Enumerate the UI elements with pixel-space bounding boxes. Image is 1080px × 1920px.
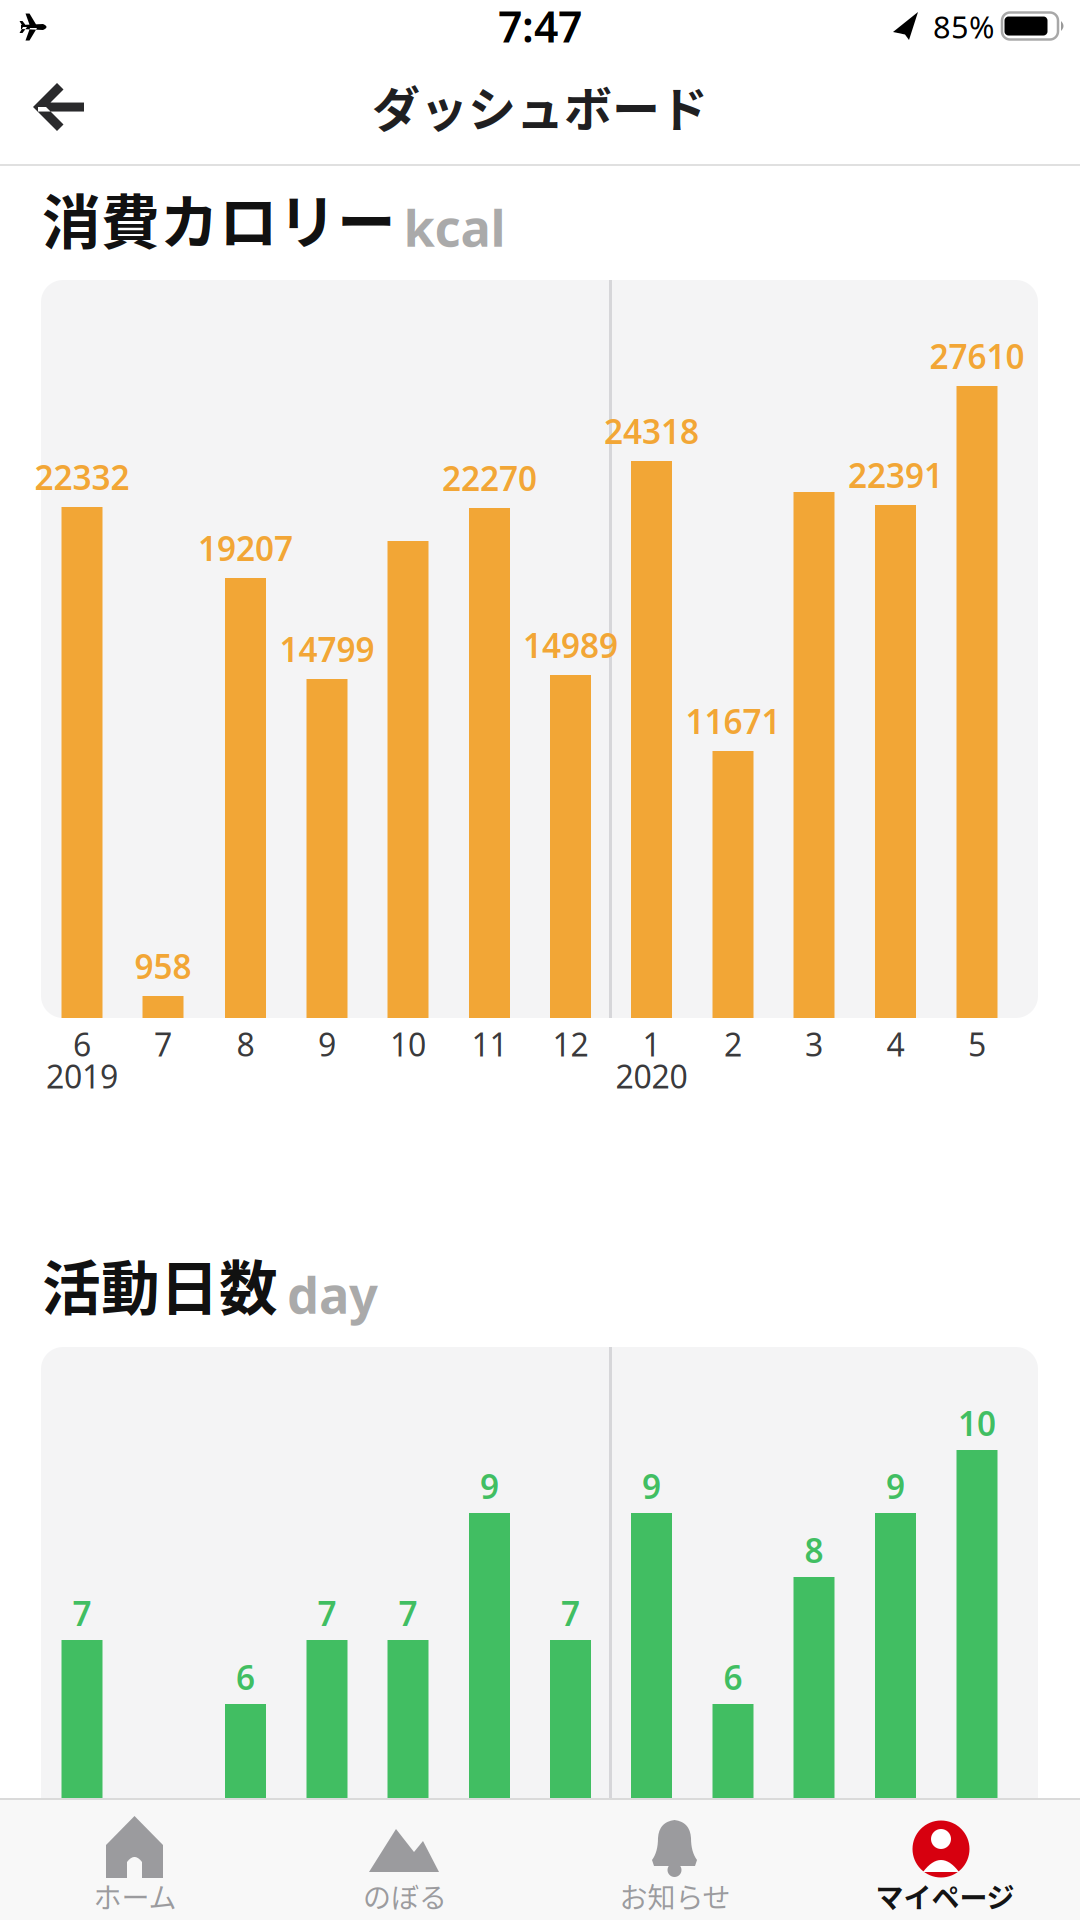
staticText: ダッシュボード [372,71,708,141]
staticText: 消費カロリー [42,176,396,261]
staticText: 10 [958,1401,996,1445]
staticText: 6 [236,1655,255,1699]
staticText: 24318 [604,409,699,453]
button[interactable] [0,57,110,157]
staticText: ホーム [93,1876,176,1916]
button[interactable]: マイページ [810,1798,1080,1920]
staticText: 22391 [848,453,943,497]
staticText: 12 [552,1023,588,1065]
staticText: 2 [724,1023,742,1065]
staticText: 9 [480,1464,499,1508]
staticText: 5 [968,1023,986,1065]
staticText: 9 [318,1023,336,1065]
staticText: 958 [134,944,191,988]
staticText: 6 [73,1023,91,1065]
staticText: 7 [398,1591,417,1635]
staticText: お知らせ [619,1876,730,1916]
staticText: 22270 [442,456,537,500]
staticText: 9 [886,1464,905,1508]
button[interactable]: お知らせ [540,1798,810,1920]
staticText: 22332 [34,455,129,499]
staticText: 85% [933,6,994,47]
staticText: 6 [723,1655,742,1699]
staticText: 8 [236,1023,254,1065]
staticText: 3 [805,1023,823,1065]
staticText: 7 [154,1023,172,1065]
staticText: 活動日数 [42,1242,278,1327]
staticText: 14799 [279,627,374,671]
staticText: 7 [72,1591,91,1635]
staticText: 19207 [198,526,293,570]
staticText: day [287,1260,378,1328]
staticText: 9 [642,1464,661,1508]
staticText: 7:47 [498,0,582,54]
staticText: 14989 [523,623,618,667]
staticText: 11 [471,1023,507,1065]
button[interactable]: ホーム [0,1798,270,1920]
staticText: マイページ [875,1876,1014,1916]
staticText: 2019 [46,1055,118,1097]
staticText: 11671 [685,699,780,743]
staticText: 27610 [929,334,1024,378]
staticText: 8 [804,1528,823,1572]
staticText: 2020 [615,1055,687,1097]
staticText: kcal [403,193,505,261]
staticText: 10 [390,1023,426,1065]
staticText: のぼる [363,1876,447,1916]
staticText: 4 [886,1023,904,1065]
staticText: 1 [642,1023,660,1065]
staticText: 7 [561,1591,580,1635]
button[interactable]: のぼる [270,1798,540,1920]
staticText: 7 [317,1591,336,1635]
